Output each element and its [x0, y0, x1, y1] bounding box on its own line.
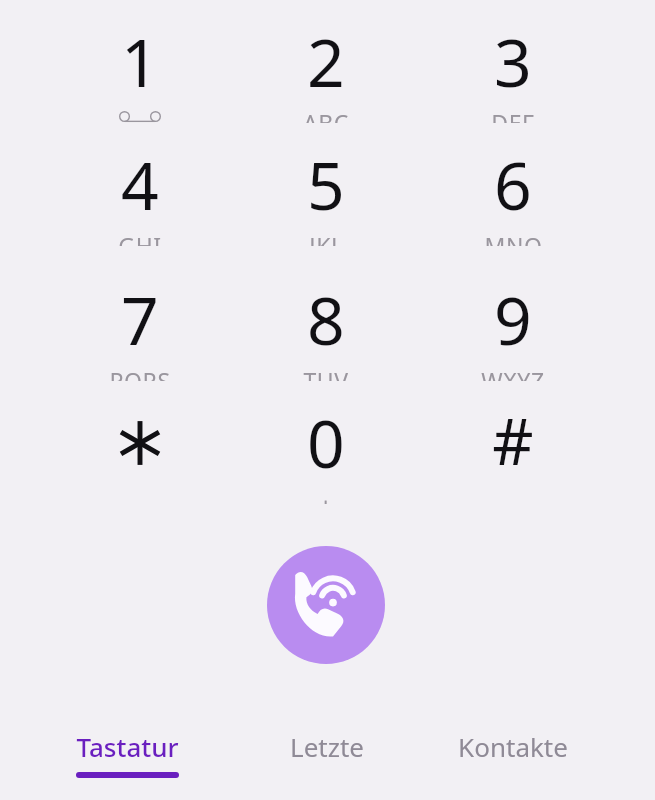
button[interactable]: 6	[420, 123, 606, 246]
staticText: ABC	[303, 107, 349, 123]
button[interactable]: Kontakte	[413, 708, 613, 784]
staticText: PQRS	[109, 365, 171, 381]
staticText: 6	[494, 139, 532, 229]
staticText: #	[492, 397, 534, 484]
button[interactable]: 1	[47, 0, 233, 123]
button[interactable]: 0	[233, 381, 419, 504]
staticText: 4	[121, 139, 159, 229]
staticText: 8	[307, 274, 345, 364]
staticText: 2	[307, 16, 345, 106]
button[interactable]: #	[420, 381, 606, 504]
staticText: 1	[121, 16, 159, 106]
staticText: 7	[121, 274, 159, 364]
button[interactable]	[47, 381, 233, 504]
button[interactable]: 3	[420, 0, 606, 123]
staticText: 0	[307, 397, 345, 487]
button[interactable]: 9	[420, 258, 606, 381]
staticText: +	[318, 488, 334, 504]
button[interactable]: 4	[47, 123, 233, 246]
staticText: 9	[494, 274, 532, 364]
staticText: TUV	[303, 365, 349, 381]
staticText: GHI	[118, 230, 162, 246]
button[interactable]: 8	[233, 258, 419, 381]
staticText: 5	[307, 139, 345, 229]
staticText: WXYZ	[481, 365, 545, 381]
staticText: Tastatur	[76, 729, 179, 764]
staticText: DEF	[491, 107, 535, 123]
staticText: Kontakte	[458, 729, 568, 764]
staticText: MNO	[484, 230, 543, 246]
button[interactable]: Anruf starten	[267, 546, 385, 664]
staticText: 3	[494, 16, 532, 106]
button[interactable]: 2	[233, 0, 419, 123]
button[interactable]: Tastatur	[27, 708, 227, 784]
staticText: Letzte	[290, 729, 364, 764]
button[interactable]: 5	[233, 123, 419, 246]
button[interactable]: Letzte	[227, 708, 427, 784]
staticText: JKL	[309, 230, 344, 246]
button[interactable]: 7	[47, 258, 233, 381]
